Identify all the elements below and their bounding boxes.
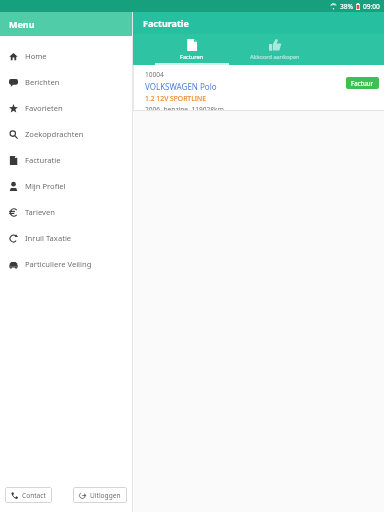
button[interactable]: Inruil Taxatie (0, 225, 132, 251)
button[interactable]: Zoekopdrachten (0, 121, 132, 147)
staticText: 38% (340, 2, 354, 11)
staticText: Favorieten (25, 103, 63, 113)
staticText: Tarieven (25, 207, 55, 217)
button[interactable]: Home (0, 43, 132, 69)
staticText: Facturen (180, 53, 204, 61)
button[interactable]: Akkoord aankopen (229, 34, 321, 65)
button[interactable]: Factuur (346, 77, 379, 89)
staticText: 09:00 (363, 2, 380, 11)
button[interactable]: Facturatie (0, 147, 132, 173)
staticText: Facturatie (25, 155, 61, 165)
staticText: Particuliere Veiling (25, 259, 92, 269)
button[interactable]: Uitloggen (73, 487, 127, 503)
staticText: Inruil Taxatie (25, 233, 72, 243)
staticText: Facturatie (143, 17, 189, 29)
staticText: 10004 (145, 70, 164, 79)
staticText: 2006, benzine, 119028km (145, 105, 224, 111)
staticText: Berichten (25, 77, 60, 87)
staticText: Menu (9, 18, 35, 30)
staticText: VOLKSWAGEN Polo (145, 81, 217, 92)
button[interactable]: Particuliere Veiling (0, 251, 132, 277)
staticText: Contact (22, 491, 46, 500)
staticText: 1.2 12V SPORTLINE (145, 94, 206, 103)
button[interactable]: Berichten (0, 69, 132, 95)
staticText: Factuur (351, 79, 374, 87)
button[interactable]: Favorieten (0, 95, 132, 121)
button[interactable]: Facturen (155, 34, 229, 65)
button[interactable]: 10004 (133, 65, 384, 111)
button[interactable]: Mijn Profiel (0, 173, 132, 199)
staticText: Zoekopdrachten (25, 129, 84, 139)
staticText: Home (25, 51, 47, 61)
staticText: Uitloggen (90, 491, 121, 500)
button[interactable]: Contact (5, 487, 52, 503)
button[interactable]: Tarieven (0, 199, 132, 225)
staticText: Akkoord aankopen (250, 53, 300, 61)
staticText: Mijn Profiel (25, 181, 66, 191)
